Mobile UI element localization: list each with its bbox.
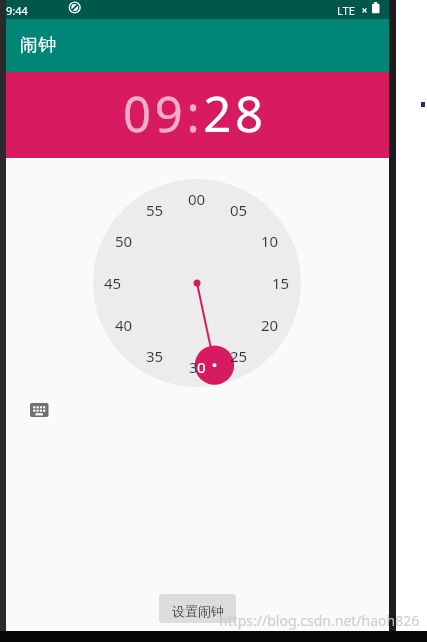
staticText: 20 (261, 315, 279, 335)
staticText: 50 (115, 231, 133, 251)
staticText: 09:28 (123, 80, 267, 147)
staticText: 10 (261, 231, 279, 251)
staticText: 40 (115, 315, 133, 335)
staticText: 闹钟 (20, 34, 56, 57)
staticText: 15 (272, 273, 290, 293)
staticText: https://blog.csdn.net/haoh826 (219, 611, 420, 630)
staticText: 05 (230, 200, 248, 220)
staticText: 55 (146, 200, 164, 220)
button[interactable] (29, 402, 49, 418)
staticText: LTE (337, 3, 355, 18)
staticText: 00 (188, 189, 206, 209)
staticText: 9:44 (6, 3, 28, 18)
staticText: 35 (146, 346, 164, 366)
staticText: 25 (230, 346, 248, 366)
staticText: 0 (197, 357, 206, 377)
staticText: 3 (189, 357, 198, 377)
staticText: 45 (104, 273, 122, 293)
button[interactable]: 设置闹钟 (159, 594, 236, 623)
staticText: 设置闹钟 (172, 603, 224, 619)
